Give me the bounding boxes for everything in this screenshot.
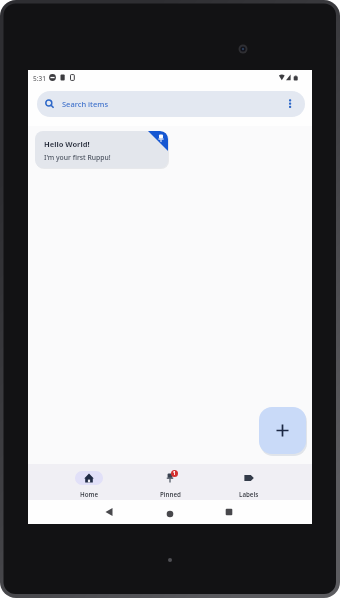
- button[interactable]: Search items: [37, 91, 305, 117]
- staticText: Labels: [239, 490, 259, 498]
- button[interactable]: [259, 407, 306, 454]
- staticText: Search items: [62, 99, 109, 109]
- staticText: Home: [80, 490, 99, 498]
- staticText: 1: [173, 470, 176, 477]
- staticText: Hello World!: [44, 139, 90, 149]
- button[interactable]: Home: [65, 466, 113, 498]
- button[interactable]: Hello World!: [35, 131, 168, 168]
- button[interactable]: [220, 504, 238, 520]
- staticText: Pinned: [160, 490, 181, 498]
- staticText: 5:31: [33, 74, 46, 83]
- button[interactable]: [161, 504, 179, 520]
- staticText: I'm your first Ruppu!: [44, 153, 111, 162]
- button[interactable]: [100, 504, 118, 520]
- button[interactable]: Labels: [225, 466, 273, 498]
- button[interactable]: 1: [146, 466, 194, 498]
